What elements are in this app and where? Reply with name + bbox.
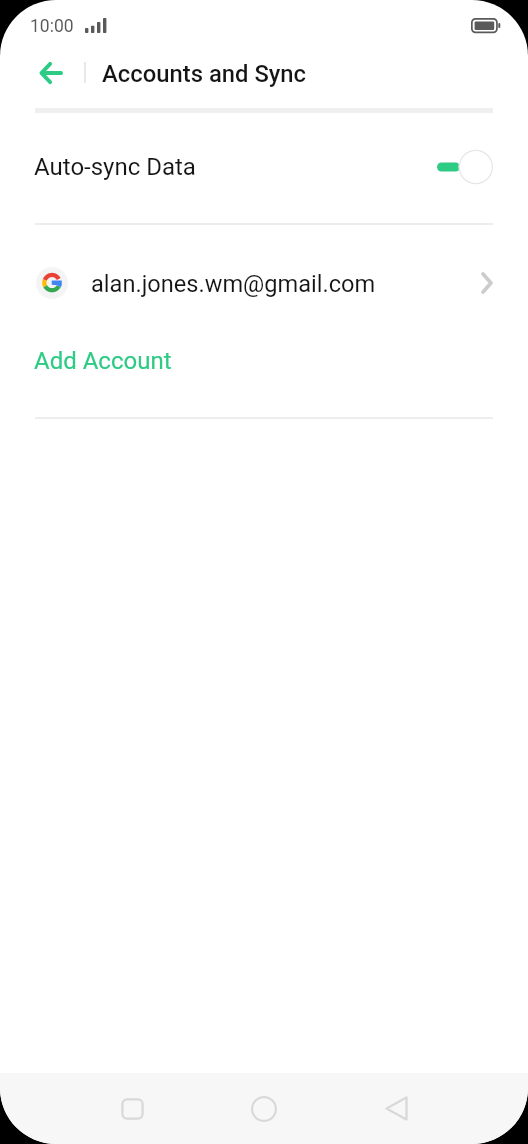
- button[interactable]: Add Account: [0, 341, 528, 381]
- button[interactable]: Recent apps: [110, 1073, 154, 1144]
- button[interactable]: Auto-sync Data: [0, 141, 528, 193]
- staticText: Add Account: [34, 347, 172, 375]
- button[interactable]: Back: [374, 1073, 418, 1144]
- staticText: 10:00: [30, 16, 74, 37]
- button[interactable]: alan.jones.wm@gmail.com: [0, 256, 528, 310]
- staticText: alan.jones.wm@gmail.com: [91, 270, 376, 298]
- staticText: Accounts and Sync: [102, 60, 307, 88]
- button[interactable]: Home: [242, 1073, 286, 1144]
- button[interactable]: Auto-sync Data toggle, on: [437, 149, 493, 185]
- button[interactable]: Back: [29, 51, 73, 95]
- staticText: Auto-sync Data: [34, 153, 196, 181]
